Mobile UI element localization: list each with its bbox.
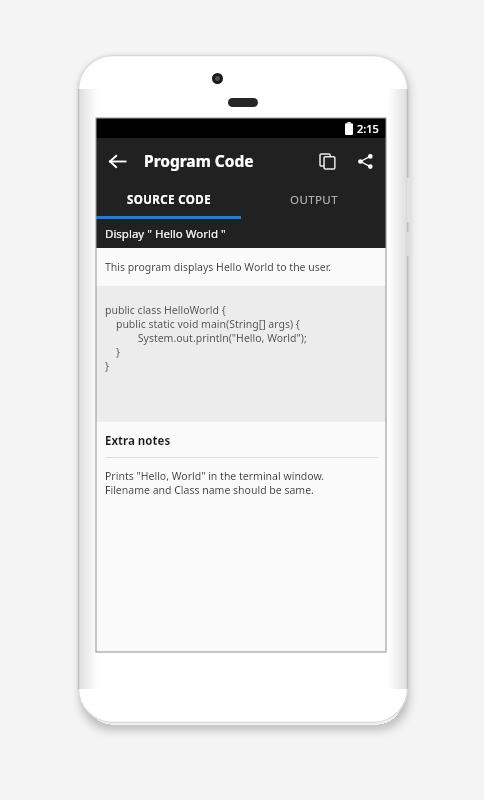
staticText: Program Code: [144, 150, 254, 171]
staticText: Display " Hello World ": [105, 226, 226, 242]
button[interactable]: OUTPUT: [241, 183, 386, 216]
staticText: OUTPUT: [290, 192, 338, 208]
staticText: Prints "Hello, World" in the terminal wi…: [105, 469, 325, 483]
staticText: public class HelloWorld {: [105, 303, 226, 317]
button[interactable]: SOURCE CODE: [96, 183, 241, 216]
button[interactable]: Navigate up: [100, 144, 134, 178]
staticText: System.out.println("Hello, World");: [105, 331, 307, 345]
staticText: }: [105, 345, 120, 359]
staticText: }: [105, 359, 109, 373]
staticText: This program displays Hello World to the…: [105, 260, 332, 274]
staticText: Filename and Class name should be same.: [105, 483, 314, 497]
staticText: 2:15: [357, 121, 379, 136]
button[interactable]: Share: [348, 144, 382, 178]
button[interactable]: Copy code: [310, 144, 344, 178]
staticText: SOURCE CODE: [127, 192, 211, 208]
staticText: public static void main(String[] args) {: [105, 317, 300, 331]
staticText: Extra notes: [105, 433, 171, 449]
